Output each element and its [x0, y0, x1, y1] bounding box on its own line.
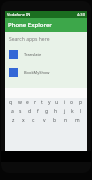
staticText: c — [32, 117, 35, 124]
staticText: k — [71, 108, 74, 115]
staticText: d — [28, 108, 32, 115]
staticText: l — [80, 108, 82, 115]
staticText: Translate — [24, 52, 42, 57]
staticText: BookMyShow — [24, 70, 50, 75]
staticText: Phone Explorer — [8, 21, 52, 29]
staticText: s — [19, 108, 22, 115]
staticText: j — [64, 108, 66, 115]
staticText: Search apps here — [9, 36, 50, 43]
staticText: o — [70, 99, 74, 106]
staticText: i — [64, 99, 66, 106]
staticText: b — [53, 117, 57, 124]
staticText: f — [37, 108, 39, 115]
staticText: v — [43, 117, 46, 124]
staticText: Vodafone IN — [7, 12, 31, 17]
staticText: r — [34, 99, 37, 106]
staticText: e — [26, 99, 29, 106]
staticText: m — [75, 117, 80, 124]
staticText: 4:30 — [77, 12, 85, 17]
staticText: g — [45, 108, 49, 115]
staticText: n — [64, 117, 68, 124]
button[interactable]: BookMyShow — [5, 67, 87, 77]
staticText: p — [79, 99, 83, 106]
staticText: x — [22, 117, 25, 124]
staticText: w — [18, 99, 22, 106]
button[interactable]: Translate — [5, 49, 87, 59]
staticText: q — [9, 99, 13, 106]
staticText: a — [11, 108, 14, 115]
staticText: y — [48, 99, 51, 106]
staticText: h — [54, 108, 58, 115]
staticText: u — [55, 99, 59, 106]
staticText: z — [12, 117, 15, 124]
staticText: t — [41, 99, 43, 106]
